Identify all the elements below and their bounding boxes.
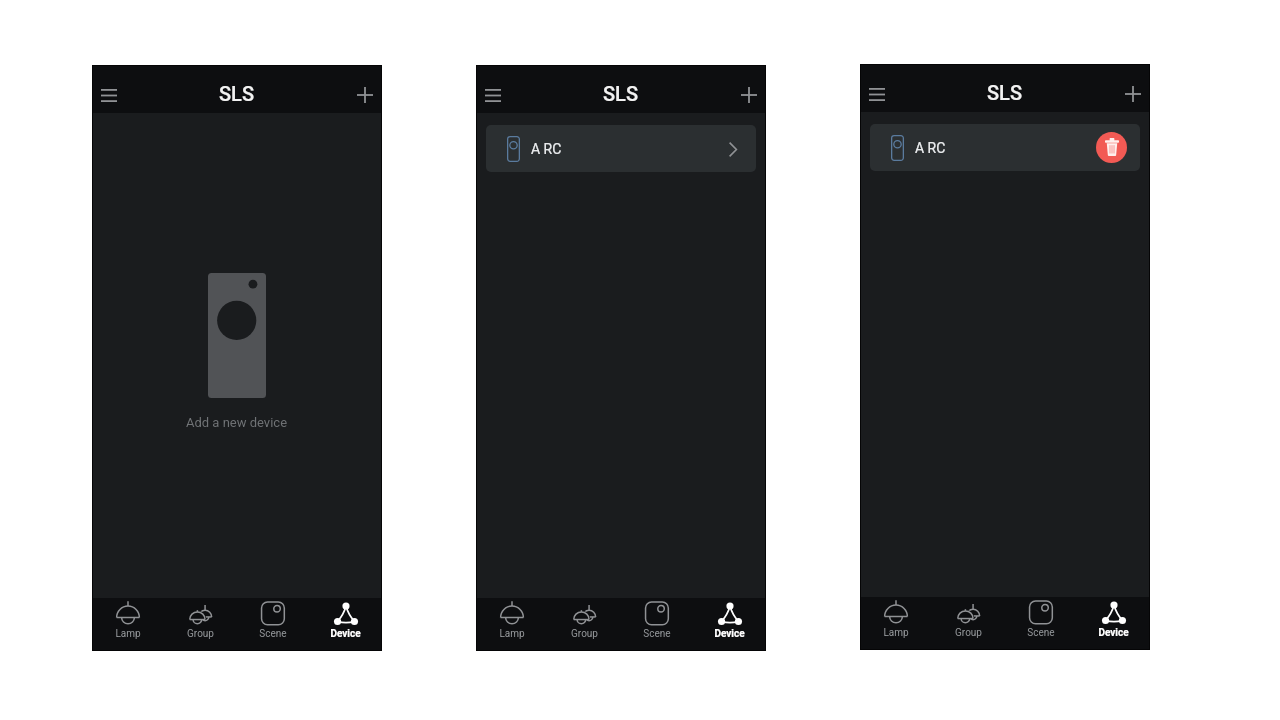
staticText: Device [1098, 627, 1129, 639]
staticText: Device [330, 628, 361, 640]
staticText: Scene [643, 628, 671, 640]
button[interactable]: Menu [861, 78, 893, 110]
button[interactable]: Lamp [476, 598, 548, 651]
button[interactable]: Group [932, 597, 1004, 650]
button[interactable]: Device [309, 598, 382, 651]
button[interactable]: Group [548, 598, 620, 651]
button[interactable]: Group [164, 598, 236, 651]
button[interactable]: Lamp [860, 597, 932, 650]
staticText: Device [714, 628, 745, 640]
button[interactable]: Device [693, 598, 766, 651]
button[interactable]: A RC [870, 124, 1140, 171]
button[interactable]: Add [349, 79, 381, 111]
button[interactable]: Add [733, 79, 765, 111]
button[interactable]: Lamp [92, 598, 164, 651]
button[interactable]: Scene [620, 598, 693, 651]
button[interactable]: Menu [93, 79, 125, 111]
staticText: SLS [987, 81, 1023, 104]
staticText: Group [187, 628, 214, 640]
staticText: Scene [1027, 627, 1055, 639]
button[interactable]: A RC [486, 125, 756, 172]
staticText: SLS [219, 82, 255, 105]
button[interactable]: Scene [236, 598, 309, 651]
staticText: A RC [531, 141, 562, 157]
button[interactable]: Add [1117, 78, 1149, 110]
staticText: Lamp [115, 628, 141, 640]
staticText: A RC [915, 140, 946, 156]
button[interactable]: Scene [1004, 597, 1077, 650]
staticText: Lamp [499, 628, 525, 640]
button[interactable]: Delete [1096, 132, 1127, 163]
staticText: Group [571, 628, 598, 640]
button[interactable]: Open device [722, 138, 744, 160]
staticText: Scene [259, 628, 287, 640]
staticText: Add a new device [186, 415, 288, 430]
button[interactable]: Menu [477, 79, 509, 111]
staticText: SLS [603, 82, 639, 105]
staticText: Lamp [883, 627, 909, 639]
button[interactable]: Device [1077, 597, 1150, 650]
staticText: Group [955, 627, 982, 639]
